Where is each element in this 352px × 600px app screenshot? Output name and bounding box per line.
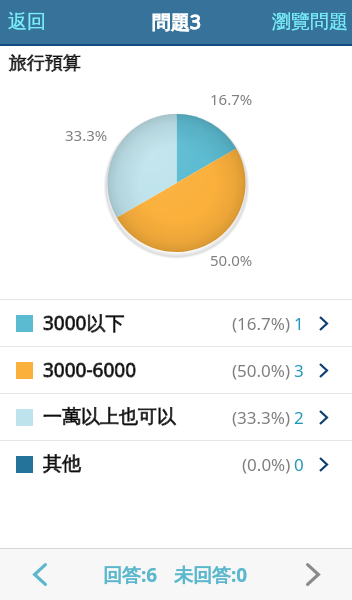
staticText: 其他 bbox=[43, 452, 81, 476]
staticText: (16.7%) bbox=[232, 312, 291, 335]
staticText: 0 bbox=[294, 453, 304, 476]
staticText: 3000-6000 bbox=[43, 357, 137, 383]
staticText: 問題3 bbox=[152, 9, 201, 35]
staticText: 旅行預算 bbox=[9, 52, 81, 75]
staticText: (50.0%) bbox=[232, 359, 291, 382]
staticText: 回答:6 bbox=[103, 562, 158, 588]
button[interactable]: Next question bbox=[273, 549, 352, 600]
staticText: 其他 bbox=[43, 452, 81, 476]
staticText: 3000以下 bbox=[43, 310, 125, 336]
staticText: 3000-6000 bbox=[43, 357, 137, 383]
button[interactable]: 瀏覽問題 bbox=[263, 0, 352, 44]
staticText: 16.7% bbox=[210, 89, 253, 109]
staticText: 未回答:0 bbox=[174, 562, 248, 588]
button[interactable]: Previous question bbox=[0, 549, 79, 600]
staticText: 一萬以上也可以 bbox=[43, 405, 176, 429]
button[interactable]: 3000以下 bbox=[0, 300, 352, 346]
staticText: 50.0% bbox=[210, 250, 253, 270]
staticText: 3 bbox=[294, 359, 304, 382]
staticText: 2 bbox=[294, 406, 304, 429]
staticText: 問題3 bbox=[152, 9, 201, 35]
staticText: (0.0%) bbox=[242, 453, 291, 476]
button[interactable]: 返回 bbox=[0, 0, 55, 44]
button[interactable]: 3000-6000 bbox=[0, 347, 352, 393]
staticText: 返回 bbox=[8, 10, 46, 34]
staticText: 瀏覽問題 bbox=[272, 10, 348, 34]
button[interactable]: 其他 bbox=[0, 441, 352, 487]
button[interactable]: 一萬以上也可以 bbox=[0, 394, 352, 440]
staticText: 1 bbox=[294, 312, 304, 335]
staticText: 3000以下 bbox=[43, 310, 125, 336]
staticText: 33.3% bbox=[65, 125, 108, 145]
staticText: (33.3%) bbox=[232, 406, 291, 429]
staticText: 一萬以上也可以 bbox=[43, 405, 176, 429]
staticText: 旅行預算 bbox=[9, 52, 81, 75]
